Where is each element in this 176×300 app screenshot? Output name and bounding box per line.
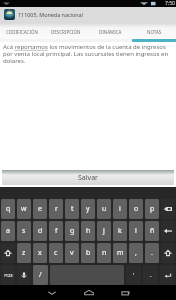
button[interactable]: n xyxy=(97,243,111,263)
button[interactable]: s xyxy=(17,221,31,241)
staticText: q xyxy=(6,204,11,214)
button[interactable]: Shift xyxy=(1,243,15,263)
button[interactable]: DESCRIPCIÓN xyxy=(44,22,88,39)
button[interactable]: Go xyxy=(160,265,175,285)
button[interactable]: a xyxy=(1,221,15,241)
button[interactable]: q xyxy=(1,199,15,219)
button[interactable]: Backspace xyxy=(161,199,175,219)
button[interactable]: x xyxy=(33,243,47,263)
button[interactable]: e xyxy=(33,199,47,219)
button[interactable]: CODIFICACIÓN xyxy=(0,22,44,39)
staticText: g xyxy=(70,226,75,236)
button[interactable]: p xyxy=(145,199,159,219)
staticText: k xyxy=(118,226,122,236)
button[interactable]: ?123 xyxy=(1,265,15,285)
button[interactable]: Shift xyxy=(161,243,175,263)
staticText: ñ xyxy=(150,226,155,236)
staticText: b xyxy=(86,248,91,258)
staticText: 7:50 xyxy=(165,0,175,7)
staticText: DESCRIPCIÓN xyxy=(51,29,81,35)
button[interactable]: . xyxy=(145,243,159,263)
staticText: . xyxy=(150,271,152,279)
staticText: e xyxy=(38,204,42,214)
button[interactable]: k xyxy=(113,221,127,241)
button[interactable]: c xyxy=(49,243,63,263)
staticText: t xyxy=(71,204,74,214)
staticText: h xyxy=(86,226,91,236)
button[interactable]: , xyxy=(129,243,143,263)
staticText: ' xyxy=(133,271,135,279)
staticText: l xyxy=(135,226,137,236)
staticText: s xyxy=(22,226,26,236)
staticText: 111005. Moneda nacional xyxy=(18,11,83,18)
button[interactable]: Back xyxy=(42,285,61,300)
button[interactable]: w xyxy=(17,199,31,219)
button[interactable]: Recents xyxy=(116,285,135,300)
staticText: Acá reportamos los movimientos de la cue… xyxy=(3,43,173,65)
staticText: d xyxy=(38,226,43,236)
staticText: y xyxy=(86,204,90,214)
button[interactable]: App icon xyxy=(4,9,15,20)
staticText: Salvar xyxy=(78,173,98,183)
button[interactable]: Home xyxy=(79,285,98,300)
staticText: , xyxy=(135,248,137,258)
button[interactable]: b xyxy=(81,243,95,263)
button[interactable]: h xyxy=(81,221,95,241)
button[interactable]: i xyxy=(113,199,127,219)
button[interactable]: y xyxy=(81,199,95,219)
button[interactable]: ñ xyxy=(145,221,159,241)
staticText: r xyxy=(55,204,58,214)
staticText: x xyxy=(38,248,42,258)
staticText: i xyxy=(119,204,121,214)
button[interactable]: ' xyxy=(126,265,141,285)
staticText: NOTAS xyxy=(147,29,162,35)
button[interactable]: Enter xyxy=(161,221,175,241)
button[interactable]: Voice input xyxy=(17,265,31,285)
staticText: DINÁMICA xyxy=(99,29,122,35)
button[interactable]: o xyxy=(129,199,143,219)
staticText: CODIFICACIÓN xyxy=(6,29,38,35)
button[interactable]: l xyxy=(129,221,143,241)
staticText: w xyxy=(21,204,27,214)
staticText: n xyxy=(102,248,107,258)
staticText: m xyxy=(117,248,124,258)
staticText: f xyxy=(55,226,58,236)
button[interactable]: DINÁMICA xyxy=(88,22,132,39)
button[interactable]: u xyxy=(97,199,111,219)
button[interactable]: v xyxy=(65,243,79,263)
button[interactable]: . xyxy=(143,265,158,285)
button[interactable]: m xyxy=(113,243,127,263)
button[interactable]: g xyxy=(65,221,79,241)
staticText: c xyxy=(54,248,58,258)
button[interactable]: t xyxy=(65,199,79,219)
staticText: p xyxy=(150,204,155,214)
staticText: v xyxy=(70,248,74,258)
staticText: a xyxy=(6,226,10,236)
staticText: z xyxy=(22,248,26,258)
staticText: j xyxy=(103,226,105,236)
staticText: . xyxy=(151,248,153,258)
staticText: o xyxy=(134,204,139,214)
button[interactable]: NOTAS xyxy=(132,22,176,39)
button[interactable]: z xyxy=(17,243,31,263)
button[interactable]: Salvar xyxy=(2,170,174,185)
button[interactable]: r xyxy=(49,199,63,219)
staticText: / xyxy=(39,270,42,280)
button[interactable]: f xyxy=(49,221,63,241)
button[interactable]: d xyxy=(33,221,47,241)
staticText: u xyxy=(102,204,107,214)
staticText: ?123 xyxy=(4,273,13,278)
button[interactable]: j xyxy=(97,221,111,241)
button[interactable]: / xyxy=(33,265,48,285)
